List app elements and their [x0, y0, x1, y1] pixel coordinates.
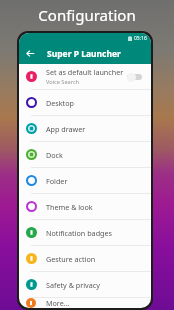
button[interactable]: More... — [19, 298, 151, 308]
button[interactable]: Notification badges — [19, 220, 151, 245]
staticText: Desktop — [46, 98, 74, 108]
staticText: Voice Search — [46, 78, 80, 86]
staticText: Super P Launcher — [47, 48, 121, 60]
staticText: Theme & look — [46, 202, 93, 212]
button[interactable]: Dock — [19, 142, 151, 167]
staticText: Configuration — [38, 5, 136, 25]
button[interactable]: Folder — [19, 168, 151, 193]
button[interactable]: App drawer — [19, 116, 151, 141]
button[interactable]: Back — [19, 43, 41, 64]
staticText: Dock — [46, 150, 63, 160]
button[interactable]: Desktop — [19, 90, 151, 115]
staticText: Set as default launcher — [46, 67, 124, 77]
button[interactable]: Gesture action — [19, 246, 151, 271]
button[interactable]: Toggle set as default launcher — [127, 72, 144, 82]
staticText: Safety & privacy — [46, 280, 100, 290]
staticText: Gesture action — [46, 254, 96, 264]
staticText: More... — [46, 298, 70, 308]
staticText: App drawer — [46, 124, 86, 134]
button[interactable]: Safety & privacy — [19, 272, 151, 297]
button[interactable]: Set as default launcher — [19, 64, 151, 89]
button[interactable]: Theme & look — [19, 194, 151, 219]
staticText: 05:16 — [134, 35, 147, 42]
staticText: Notification badges — [46, 228, 112, 238]
staticText: Folder — [46, 176, 68, 186]
